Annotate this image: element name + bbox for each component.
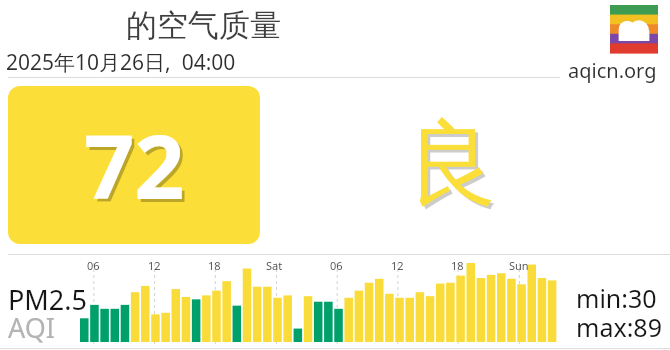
button[interactable]: aqicn.org logo [610, 5, 658, 53]
staticText: 18 [208, 258, 221, 273]
staticText: min:30 [576, 281, 657, 315]
staticText: max:89 [576, 310, 662, 344]
staticText: 的空气质量 [126, 6, 281, 45]
staticText: aqicn.org [568, 57, 657, 84]
staticText: 72 [84, 105, 185, 225]
staticText: PM2.5 [8, 281, 87, 318]
staticText: Sun [509, 258, 529, 273]
staticText: 06 [87, 258, 100, 273]
staticText: AQI [8, 309, 55, 346]
staticText: 06 [330, 258, 343, 273]
staticText: 12 [391, 258, 404, 273]
staticText: 12 [148, 258, 161, 273]
staticText: Sat [266, 258, 283, 273]
staticText: 2025年10月26日, 04:00 [6, 48, 236, 77]
staticText: 18 [451, 258, 464, 273]
staticText: 良 [406, 106, 498, 222]
staticText: 72 [87, 108, 188, 228]
staticText: 良 [409, 109, 501, 225]
button[interactable]: 72 [8, 86, 260, 244]
